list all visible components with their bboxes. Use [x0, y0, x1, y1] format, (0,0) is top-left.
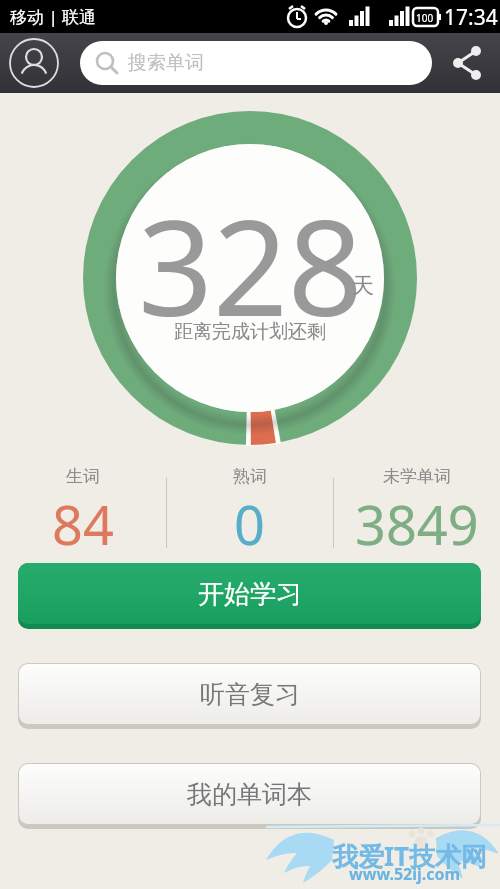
button[interactable]: 听音复习	[18, 663, 481, 729]
staticText: 天	[352, 272, 374, 300]
staticText: www.52ij.com	[349, 863, 461, 885]
staticText: 移动 | 联通	[10, 5, 97, 28]
staticText: 搜索单词	[128, 51, 204, 75]
staticText: 未学单词	[383, 466, 451, 487]
button[interactable]: 生词	[0, 466, 166, 556]
button[interactable]: 未学单词	[333, 466, 500, 556]
staticText: 0	[234, 487, 265, 556]
staticText: 听音复习	[200, 679, 300, 710]
staticText: 我的单词本	[187, 779, 312, 810]
button[interactable]: 我的单词本	[18, 763, 481, 829]
staticText: 3849	[355, 487, 479, 556]
staticText: 我爱IT技术网	[332, 838, 488, 874]
staticText: 100	[416, 11, 434, 25]
button[interactable]: 熟词	[166, 466, 333, 556]
staticText: 距离完成计划还剩	[174, 320, 326, 344]
staticText: 熟词	[233, 466, 267, 487]
staticText: 生词	[66, 466, 100, 487]
button[interactable]	[448, 43, 488, 83]
button[interactable]: 搜索单词	[80, 41, 432, 85]
staticText: 17:34	[444, 3, 498, 32]
button[interactable]	[9, 38, 59, 88]
button[interactable]: 开始学习	[18, 563, 481, 629]
staticText: 开始学习	[198, 578, 302, 611]
staticText: 328	[138, 176, 363, 354]
staticText: 84	[52, 487, 114, 556]
